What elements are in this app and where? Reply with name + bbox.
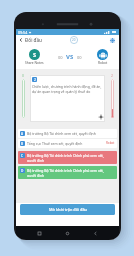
button[interactable]: S xyxy=(25,49,44,65)
staticText: S xyxy=(33,51,37,59)
staticText: Đối đầu xyxy=(25,37,42,43)
staticText: Bộ trưởng Bộ Tài chính trình Chính phủ x… xyxy=(27,168,104,177)
button[interactable]: Robot xyxy=(97,49,108,65)
button[interactable]: A xyxy=(18,129,117,138)
button[interactable]: Countdown timer xyxy=(69,35,79,45)
button[interactable]: Recent apps xyxy=(35,229,44,238)
staticText: VS xyxy=(66,53,74,61)
staticText: 2 xyxy=(34,77,36,82)
staticText: Robot xyxy=(98,61,108,65)
button[interactable]: Back xyxy=(91,229,100,238)
staticText: Share Notes xyxy=(25,61,44,65)
staticText: Mở khởi trận đối đầu xyxy=(49,207,87,212)
button[interactable]: D xyxy=(18,166,117,179)
staticText: A xyxy=(21,132,24,136)
staticText: D xyxy=(21,169,24,173)
button[interactable]: Home xyxy=(63,229,72,238)
staticText: 20 xyxy=(72,38,76,42)
button[interactable]: Back xyxy=(16,35,25,45)
staticText: B xyxy=(21,142,24,146)
staticText: C xyxy=(21,154,24,158)
button[interactable]: Settings xyxy=(107,35,117,45)
button[interactable]: C xyxy=(18,151,117,164)
staticText: 00 xyxy=(58,55,63,60)
button[interactable]: B xyxy=(18,139,117,148)
staticText: Bộ trưởng Bộ Tài chính xem xét, quyết đị… xyxy=(27,131,96,136)
staticText: Bộ trưởng Bộ Tài chính trình Chính phủ x… xyxy=(27,153,104,162)
staticText: Chiến lược, chương trình hành động, đề á… xyxy=(32,84,103,94)
staticText: 2 xyxy=(111,73,113,78)
staticText: Robot xyxy=(106,141,115,145)
staticText: 00 xyxy=(77,55,82,60)
staticText: 0 xyxy=(22,73,24,78)
staticText: Tổng cục Thuế xem xét, quyết định xyxy=(27,141,83,146)
button[interactable]: Mở khởi trận đối đầu xyxy=(20,204,115,215)
staticText: 09:54 xyxy=(18,30,28,35)
